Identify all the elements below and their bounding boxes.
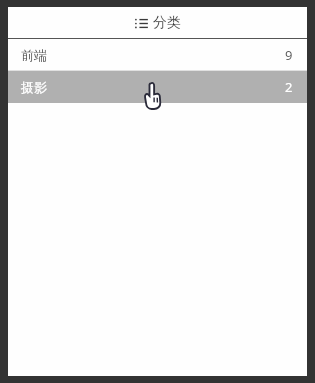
staticText: 2 — [285, 78, 293, 96]
staticText: 摄影 — [21, 79, 47, 95]
button[interactable]: 前端 — [8, 39, 307, 70]
staticText: 前端 — [21, 47, 47, 63]
staticText: 9 — [285, 46, 293, 64]
button[interactable]: Category list — [8, 7, 307, 38]
staticText: 分类 — [153, 14, 181, 32]
button[interactable]: 摄影 — [8, 71, 307, 102]
other: Category list — [135, 17, 148, 30]
